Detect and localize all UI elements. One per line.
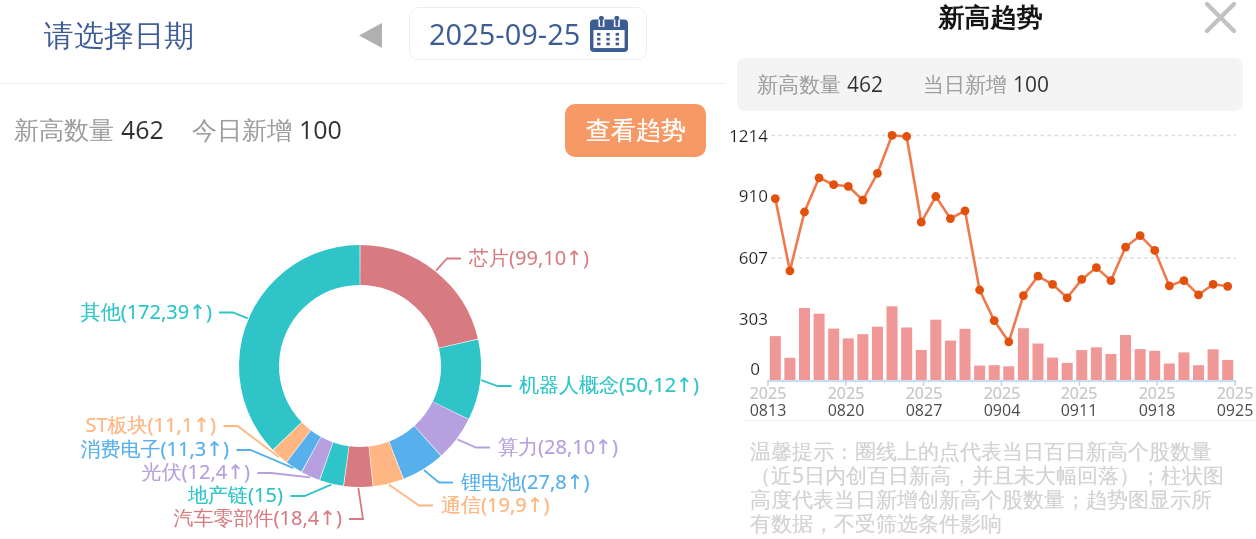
staticText: 0827 [884, 399, 964, 421]
staticText: 当日新增 [923, 70, 1013, 99]
staticText: ST板块(11,1↑) [0, 411, 216, 438]
staticText: 1214 [668, 124, 768, 147]
staticText: 2025 [1117, 382, 1197, 404]
staticText: 新高趋势 [938, 2, 1042, 35]
staticText: 2025 [962, 382, 1042, 404]
staticText: 新高数量 [757, 70, 847, 99]
staticText: 0813 [728, 399, 808, 421]
staticText: 通信(19,9↑) [441, 491, 550, 518]
staticText: 算力(28,10↑) [498, 433, 618, 460]
staticText: 机器人概念(50,12↑) [519, 371, 699, 398]
staticText: 其他(172,39↑) [0, 298, 212, 325]
button[interactable]: 2025-09-25 [409, 7, 647, 60]
staticText: 查看趋势 [586, 115, 686, 146]
staticText: 303 [668, 307, 768, 330]
staticText: 地产链(15) [0, 481, 283, 508]
staticText: 100 [1013, 70, 1050, 99]
staticText: 今日新增 [192, 112, 299, 146]
staticText: 光伏(12,4↑) [0, 458, 250, 485]
staticText: 锂电池(27,8↑) [461, 468, 590, 495]
button[interactable]: 前一天 [352, 18, 388, 52]
staticText: 0918 [1117, 399, 1197, 421]
staticText: 2025 [728, 382, 808, 404]
button[interactable]: 查看趋势 [565, 104, 706, 157]
staticText: 0925 [1195, 399, 1256, 421]
staticText: 温馨提示：圈线上的点代表当日百日新高个股数量 （近5日内创百日新高，并且未大幅回… [750, 439, 1225, 537]
staticText: 新高数量 [14, 112, 121, 146]
staticText: 2025-09-25 [429, 14, 581, 53]
staticText: 2025 [806, 382, 886, 404]
button[interactable]: 关闭 [1199, 0, 1242, 39]
staticText: 462 [847, 70, 884, 99]
staticText: 0820 [806, 399, 886, 421]
staticText: 0 [660, 357, 760, 380]
staticText: 消费电子(11,3↑) [0, 435, 229, 462]
staticText: 910 [668, 184, 768, 207]
staticText: 0911 [1039, 399, 1119, 421]
staticText: 2025 [1195, 382, 1256, 404]
staticText: 汽车零部件(18,4↑) [22, 504, 342, 531]
staticText: 2025 [884, 382, 964, 404]
staticText: 607 [668, 246, 768, 269]
staticText: 462 [121, 112, 164, 146]
staticText: 0904 [962, 399, 1042, 421]
staticText: 芯片(99,10↑) [469, 244, 589, 271]
staticText: 100 [299, 112, 342, 146]
staticText: 请选择日期 [44, 17, 194, 55]
staticText: 2025 [1039, 382, 1119, 404]
